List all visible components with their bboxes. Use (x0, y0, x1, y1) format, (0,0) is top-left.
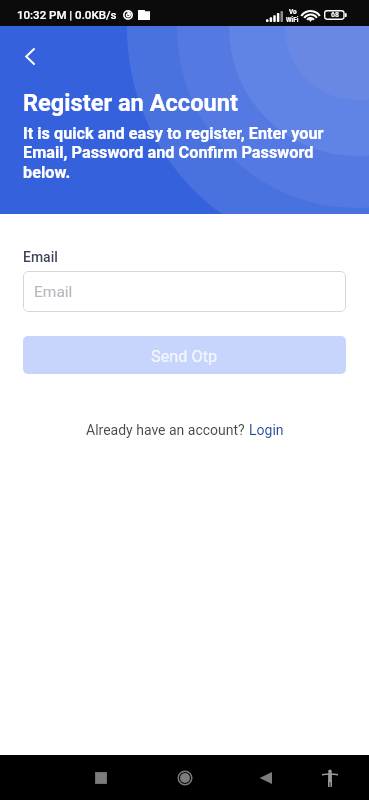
staticText: Email (23, 249, 58, 265)
staticText: Register an Account (23, 89, 238, 117)
staticText: WiFi (286, 16, 299, 24)
button[interactable]: Back (15, 41, 45, 71)
staticText: Email (34, 283, 73, 301)
button[interactable]: Home (167, 760, 203, 796)
staticText: Already have an account? (86, 422, 249, 438)
staticText: 10:32 PM | 0.0KB/s (17, 8, 117, 21)
staticText: It is quick and easy to register, Enter … (23, 124, 324, 182)
staticText: Vo (289, 8, 297, 16)
staticText: 68 (331, 11, 339, 19)
button[interactable]: Back (248, 760, 284, 796)
staticText: Send Otp (151, 347, 218, 366)
staticText: Login (249, 422, 284, 438)
button[interactable]: Login (249, 422, 284, 438)
button[interactable]: Send Otp (23, 336, 346, 374)
button[interactable]: Email (23, 271, 346, 312)
button[interactable]: Accessibility (312, 760, 348, 796)
button[interactable]: Recents (83, 760, 119, 796)
